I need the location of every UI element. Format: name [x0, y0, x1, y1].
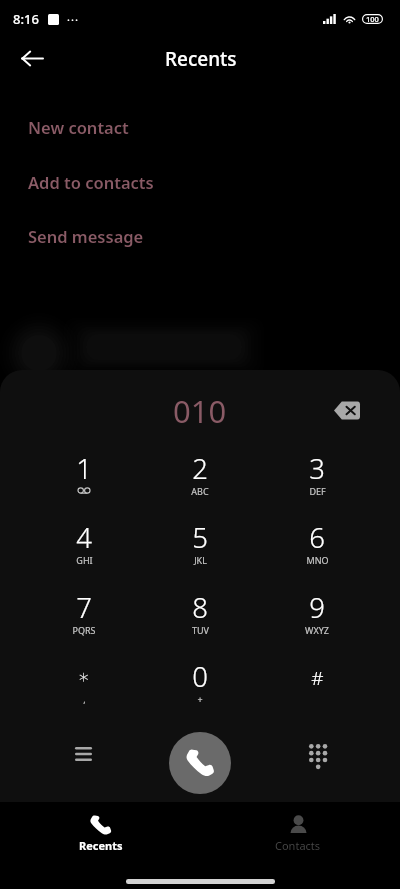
- button[interactable]: Call log menu: [62, 732, 105, 775]
- button[interactable]: 0: [156, 649, 244, 715]
- staticText: 100: [366, 14, 379, 24]
- staticText: 4: [76, 519, 92, 556]
- staticText: Contacts: [275, 838, 321, 853]
- button[interactable]: New contact: [0, 103, 400, 151]
- staticText: ,: [83, 693, 86, 705]
- button[interactable]: 6: [273, 510, 361, 576]
- staticText: 8: [192, 589, 208, 626]
- staticText: Add to contacts: [28, 171, 154, 193]
- button[interactable]: Back: [8, 34, 56, 82]
- staticText: 7: [76, 589, 92, 626]
- staticText: New contact: [28, 116, 129, 138]
- button[interactable]: #: [273, 649, 361, 715]
- button[interactable]: 9: [273, 580, 361, 646]
- staticText: 010: [173, 390, 227, 432]
- button[interactable]: 8: [156, 580, 244, 646]
- button[interactable]: Backspace: [326, 389, 368, 431]
- staticText: +: [197, 693, 203, 705]
- button[interactable]: 4: [40, 510, 128, 576]
- button[interactable]: 7: [40, 580, 128, 646]
- button[interactable]: Keypad: [295, 732, 338, 775]
- button[interactable]: 5: [156, 510, 244, 576]
- staticText: 9: [309, 589, 325, 626]
- button[interactable]: Call: [169, 732, 231, 794]
- staticText: DEF: [309, 485, 326, 497]
- button[interactable]: Contacts: [250, 804, 346, 860]
- staticText: 5: [192, 519, 208, 556]
- staticText: ABC: [191, 485, 209, 497]
- staticText: PQRS: [72, 624, 96, 636]
- staticText: Recents: [79, 838, 123, 853]
- button[interactable]: 1: [40, 441, 128, 507]
- staticText: JKL: [194, 554, 207, 566]
- staticText: #: [311, 665, 324, 691]
- staticText: TUV: [192, 624, 209, 636]
- button[interactable]: Recents: [53, 804, 149, 860]
- staticText: WXYZ: [305, 624, 329, 636]
- staticText: 0: [192, 658, 208, 695]
- button[interactable]: ∗: [40, 649, 128, 715]
- staticText: 8:16: [13, 10, 39, 28]
- staticText: GHI: [76, 554, 93, 566]
- staticText: 3: [309, 450, 325, 487]
- staticText: 1: [76, 450, 92, 487]
- button[interactable]: 2: [156, 441, 244, 507]
- staticText: MNO: [306, 554, 329, 566]
- staticText: ∗: [78, 665, 90, 687]
- staticText: Recents: [165, 46, 237, 72]
- staticText: 6: [309, 519, 325, 556]
- staticText: Send message: [28, 225, 144, 247]
- staticText: 2: [192, 450, 208, 487]
- button[interactable]: 3: [273, 441, 361, 507]
- button[interactable]: Send message: [0, 212, 400, 260]
- button[interactable]: Add to contacts: [0, 158, 400, 206]
